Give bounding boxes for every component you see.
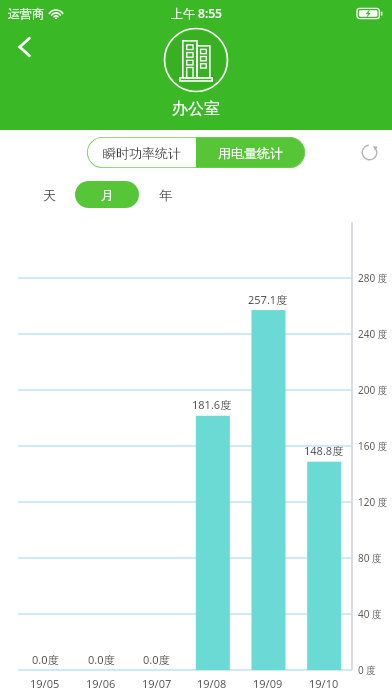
- staticText: 40 度: [358, 607, 383, 621]
- button[interactable]: 用电量统计: [196, 137, 305, 168]
- button[interactable]: 瞬时功率统计: [87, 137, 196, 168]
- staticText: 19/10: [309, 676, 339, 691]
- staticText: 天: [43, 187, 56, 203]
- staticText: 运营商: [8, 6, 44, 21]
- staticText: 120 度: [358, 495, 388, 509]
- staticText: 瞬时功率统计: [103, 145, 181, 161]
- staticText: 月: [101, 187, 114, 203]
- staticText: 0 度: [358, 663, 377, 677]
- staticText: 160 度: [358, 439, 388, 453]
- staticText: 0.0度: [32, 652, 59, 667]
- staticText: 181.6度: [192, 397, 232, 412]
- staticText: 240 度: [358, 327, 388, 341]
- staticText: 上午 8:55: [171, 5, 222, 21]
- staticText: 19/06: [86, 676, 116, 691]
- staticText: 19/07: [142, 676, 172, 691]
- staticText: 148.8度: [304, 443, 344, 458]
- staticText: 19/09: [253, 676, 283, 691]
- staticText: 200 度: [358, 383, 388, 397]
- button[interactable]: 年: [148, 181, 182, 208]
- staticText: 280 度: [358, 271, 388, 285]
- button[interactable]: Refresh: [352, 135, 386, 169]
- staticText: 用电量统计: [218, 145, 283, 161]
- button[interactable]: 天: [32, 181, 66, 208]
- staticText: 办公室: [172, 99, 220, 119]
- staticText: 19/05: [30, 676, 60, 691]
- staticText: 19/08: [197, 676, 227, 691]
- button[interactable]: Back: [4, 26, 46, 68]
- staticText: 年: [159, 187, 172, 203]
- staticText: 0.0度: [143, 652, 170, 667]
- staticText: 257.1度: [248, 292, 288, 307]
- button[interactable]: 月: [75, 181, 139, 208]
- staticText: 80 度: [358, 551, 383, 565]
- staticText: 0.0度: [88, 652, 115, 667]
